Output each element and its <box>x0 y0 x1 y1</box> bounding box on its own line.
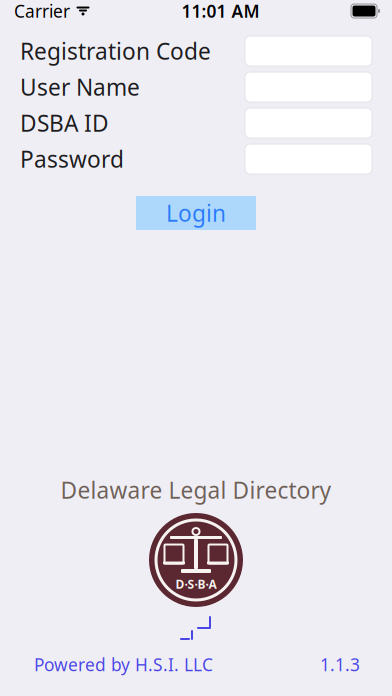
button[interactable]: Powered by H.S.I. LLC <box>34 653 213 676</box>
button[interactable]: DSBA ID <box>245 108 372 138</box>
staticText: DSBA ID <box>20 108 109 138</box>
staticText: Delaware Legal Directory <box>60 475 331 505</box>
staticText: 1.1.3 <box>320 653 360 676</box>
staticText: D·S·B·A <box>175 576 216 592</box>
button[interactable]: Login <box>136 196 256 230</box>
staticText: Password <box>20 144 124 174</box>
staticText: User Name <box>20 72 140 102</box>
staticText: Carrier <box>14 0 70 22</box>
staticText: Registration Code <box>20 36 211 66</box>
button[interactable]: User Name <box>245 72 372 102</box>
button[interactable]: Registration Code <box>245 36 372 66</box>
staticText: Powered by H.S.I. LLC <box>34 653 213 676</box>
button[interactable]: Password <box>245 144 372 174</box>
staticText: 11:01 AM <box>181 0 259 22</box>
staticText: Login <box>166 198 226 228</box>
